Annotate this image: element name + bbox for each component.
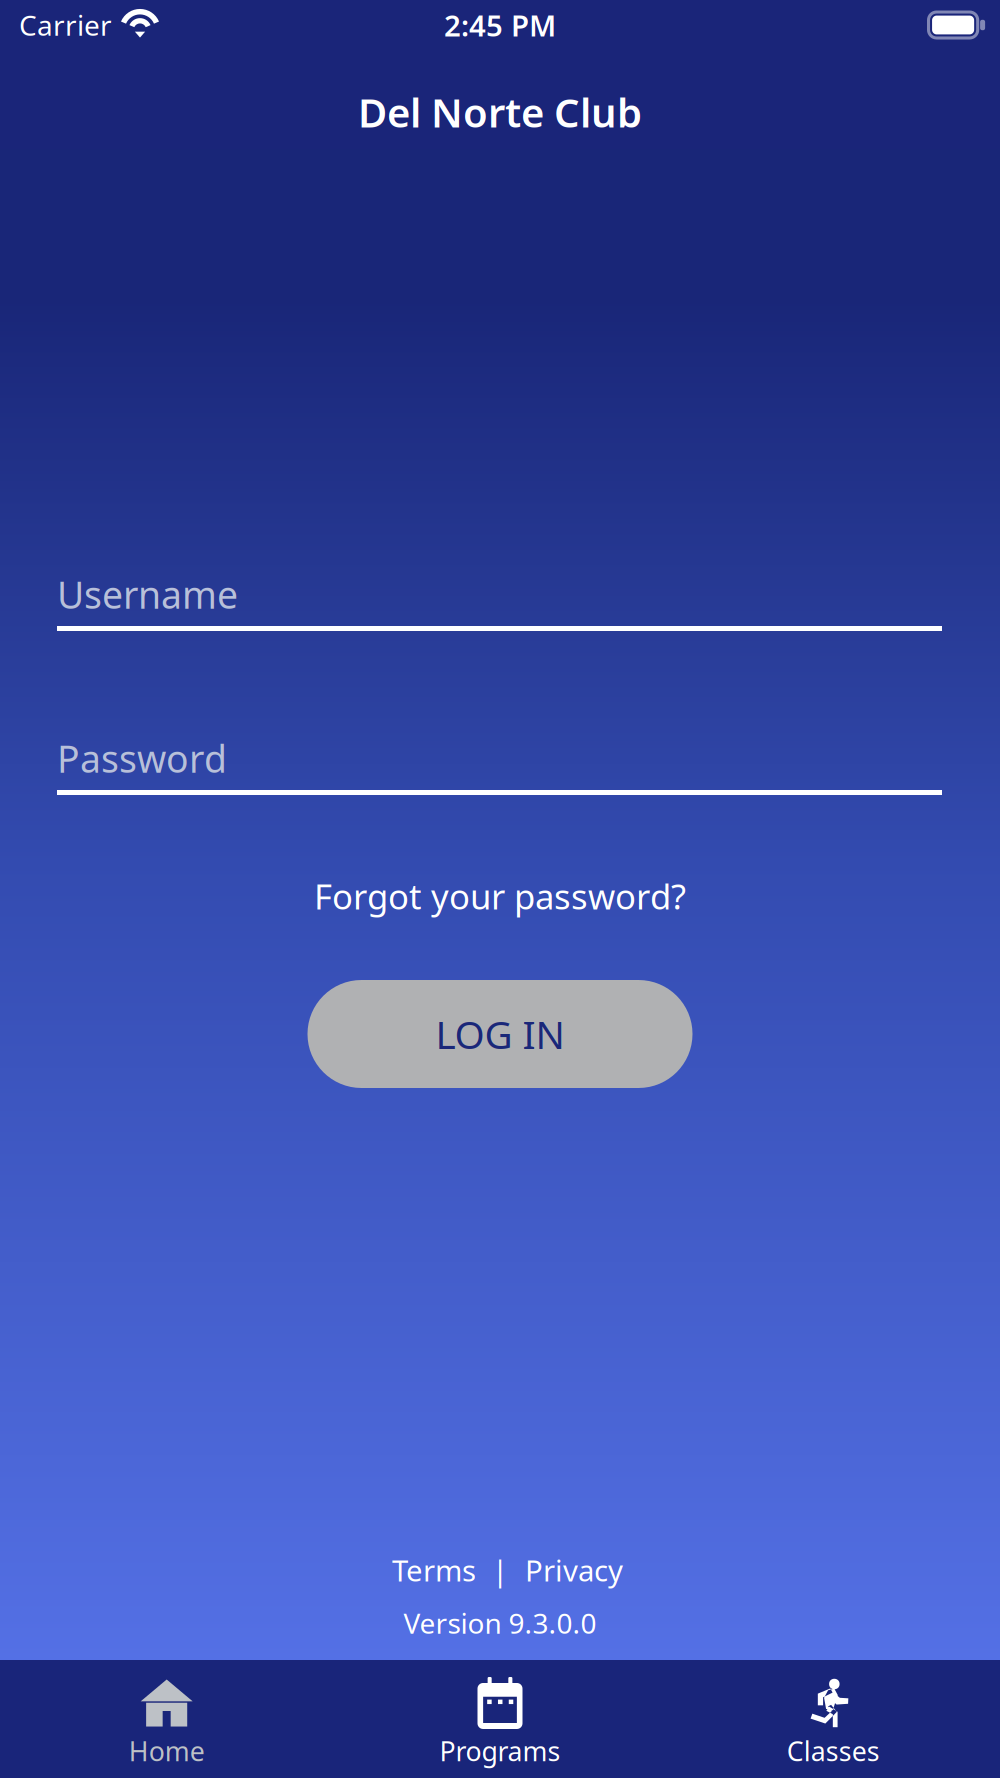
staticText: Home — [129, 1733, 205, 1769]
staticText: | — [492, 1550, 508, 1589]
button[interactable]: Home — [0, 1660, 333, 1778]
staticText: Terms — [392, 1550, 476, 1589]
staticText: Password — [57, 733, 227, 783]
button[interactable]: Terms — [382, 1542, 486, 1597]
staticText: Forgot your password? — [314, 873, 686, 919]
button[interactable]: Forgot your password? — [298, 863, 702, 929]
staticText: Privacy — [525, 1550, 623, 1589]
staticText: 2:45 PM — [444, 5, 556, 44]
staticText: Programs — [439, 1733, 560, 1769]
staticText: Username — [57, 569, 238, 619]
staticText: Carrier — [19, 6, 112, 44]
button[interactable]: Password — [57, 731, 942, 795]
button[interactable]: Programs — [333, 1660, 667, 1778]
button[interactable]: LOG IN — [307, 980, 692, 1088]
staticText: LOG IN — [435, 1008, 564, 1060]
button[interactable]: Classes — [667, 1660, 1000, 1778]
button[interactable]: Privacy — [515, 1542, 633, 1597]
staticText: Del Norte Club — [358, 85, 642, 138]
staticText: Classes — [787, 1733, 880, 1769]
button[interactable]: Username — [57, 567, 942, 631]
staticText: Version 9.3.0.0 — [403, 1604, 596, 1642]
